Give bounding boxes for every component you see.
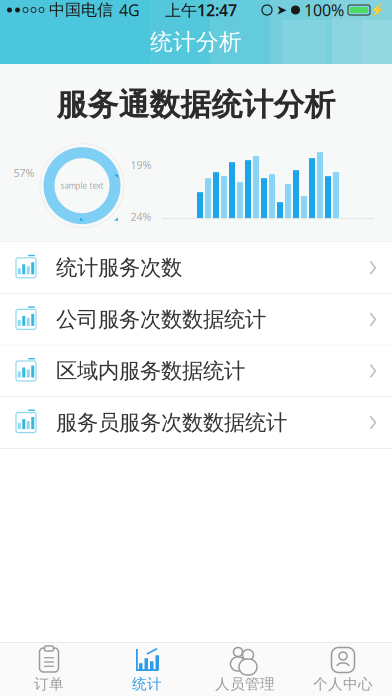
- button[interactable]: 公司服务次数数据统计: [0, 294, 392, 345]
- button[interactable]: 人员管理: [196, 640, 294, 696]
- staticText: 4G: [119, 0, 140, 21]
- staticText: 统计: [132, 675, 162, 693]
- button[interactable]: 服务员服务次数数据统计: [0, 397, 392, 449]
- staticText: 上午12:47: [165, 0, 237, 21]
- staticText: 个人中心: [313, 675, 373, 693]
- staticText: 100%: [304, 0, 344, 21]
- staticText: 订单: [34, 675, 64, 693]
- staticText: 公司服务次数数据统计: [56, 306, 266, 332]
- staticText: 区域内服务数据统计: [56, 358, 245, 384]
- staticText: 服务通数据统计分析: [56, 86, 335, 124]
- staticText: 人员管理: [215, 675, 275, 693]
- staticText: 24%: [130, 209, 151, 224]
- staticText: ⚡: [370, 3, 385, 17]
- staticText: 统计服务次数: [56, 255, 182, 281]
- button[interactable]: 统计服务次数: [0, 242, 392, 294]
- staticText: 57%: [13, 166, 34, 180]
- button[interactable]: 订单: [0, 640, 98, 696]
- staticText: 服务员服务次数数据统计: [56, 409, 287, 436]
- button[interactable]: 区域内服务数据统计: [0, 345, 392, 397]
- staticText: sample text: [60, 180, 103, 191]
- staticText: 19%: [130, 158, 151, 172]
- staticText: 中国电信: [49, 0, 113, 20]
- button[interactable]: 统计: [98, 640, 196, 696]
- staticText: ➤: [276, 2, 287, 17]
- button[interactable]: 个人中心: [294, 640, 392, 696]
- staticText: 统计分析: [150, 28, 242, 56]
